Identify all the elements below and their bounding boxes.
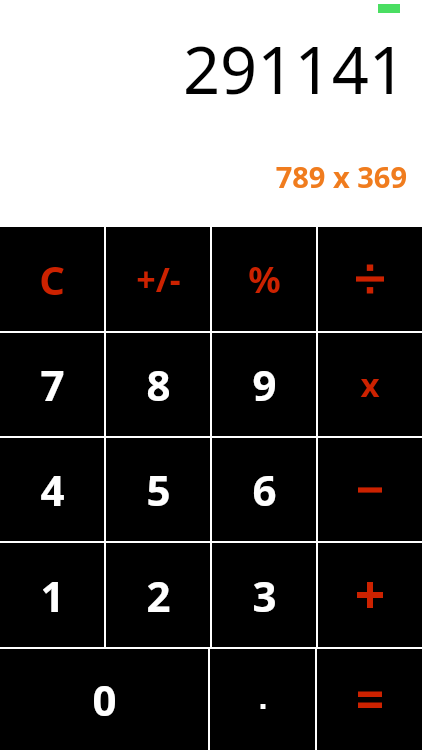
button[interactable]: 7	[0, 333, 104, 436]
staticText: 789 x 369	[275, 157, 407, 196]
staticText: 8	[146, 356, 171, 413]
staticText: 5	[146, 461, 171, 518]
button[interactable]: Decimal point	[210, 649, 315, 750]
button[interactable]: %	[212, 227, 316, 331]
staticText: +/-	[136, 256, 181, 302]
button[interactable]: Divide	[318, 227, 422, 331]
staticText: 4	[40, 461, 65, 518]
button[interactable]: 5	[106, 438, 210, 541]
staticText: 291141	[182, 25, 406, 114]
button[interactable]: 6	[212, 438, 316, 541]
staticText: 3	[252, 567, 277, 624]
button[interactable]: Equals	[317, 649, 422, 750]
button[interactable]: 0	[0, 649, 208, 750]
button[interactable]: 4	[0, 438, 104, 541]
button[interactable]: Minus	[318, 438, 422, 541]
button[interactable]: 9	[212, 333, 316, 436]
button[interactable]: 2	[106, 543, 210, 647]
staticText: 9	[252, 356, 277, 413]
staticText: C	[39, 252, 65, 306]
button[interactable]: 8	[106, 333, 210, 436]
staticText: 0	[92, 671, 117, 728]
staticText: x	[360, 362, 380, 407]
staticText: %	[248, 255, 281, 304]
staticText: 2	[146, 567, 171, 624]
staticText: 1	[40, 567, 65, 624]
staticText: 6	[252, 461, 277, 518]
button[interactable]: 3	[212, 543, 316, 647]
button[interactable]: C	[0, 227, 104, 331]
staticText: 7	[40, 356, 65, 413]
button[interactable]: +/-	[106, 227, 210, 331]
button[interactable]: Multiply	[318, 333, 422, 436]
button[interactable]: Plus	[318, 543, 422, 647]
button[interactable]: 1	[0, 543, 104, 647]
